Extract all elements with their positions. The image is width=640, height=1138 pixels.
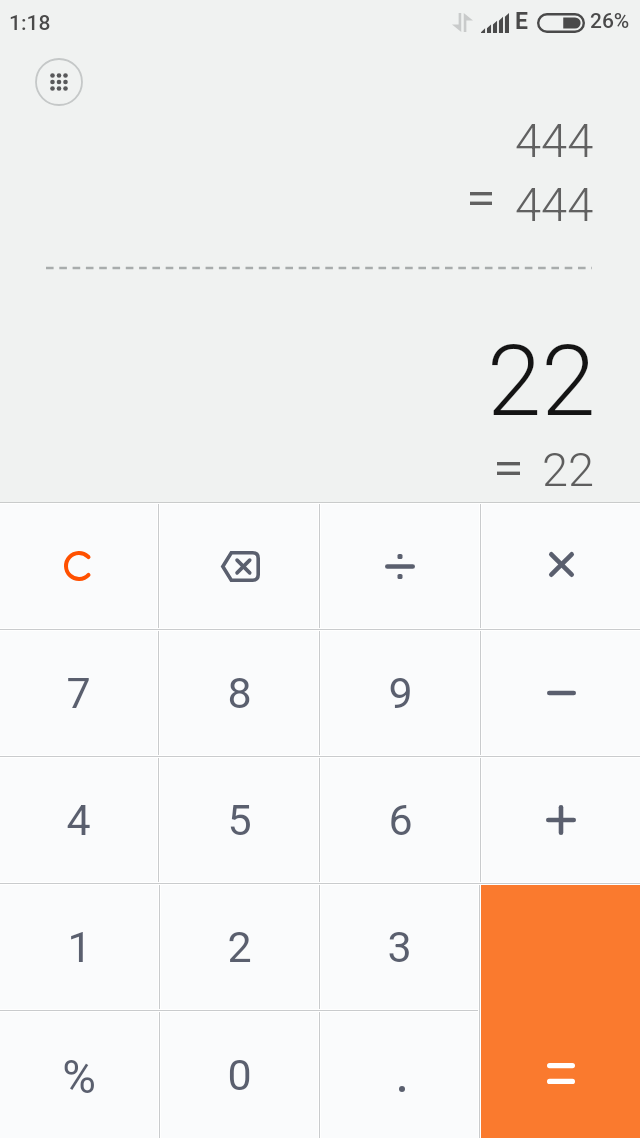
button[interactable]: 7 bbox=[0, 631, 157, 755]
button[interactable]: 0 bbox=[161, 1012, 318, 1138]
other: Multiply bbox=[549, 552, 574, 577]
button[interactable]: 9 bbox=[321, 631, 479, 755]
staticText: 2 bbox=[227, 922, 252, 972]
button[interactable]: Apps bbox=[30, 53, 88, 111]
other: Plus bbox=[546, 805, 576, 835]
other: Minus bbox=[547, 690, 576, 696]
staticText: 6 bbox=[388, 795, 413, 845]
button[interactable]: Divide bbox=[321, 504, 479, 628]
button[interactable]: Plus bbox=[482, 758, 640, 882]
button[interactable]: Backspace bbox=[160, 504, 318, 628]
staticText: 1 bbox=[67, 922, 92, 972]
staticText: 8 bbox=[227, 668, 252, 718]
staticText: 22 bbox=[542, 442, 595, 497]
button[interactable]: 3 bbox=[321, 885, 478, 1009]
button[interactable]: 2 bbox=[161, 885, 318, 1009]
button[interactable]: 6 bbox=[321, 758, 479, 882]
staticText: 1:18 bbox=[9, 11, 51, 36]
button[interactable]: Clear bbox=[0, 504, 157, 628]
button[interactable]: Percent bbox=[0, 1012, 158, 1138]
button[interactable]: 5 bbox=[160, 758, 318, 882]
other: Divide bbox=[385, 554, 415, 579]
button[interactable]: 4 bbox=[0, 758, 157, 882]
button[interactable]: Equals bbox=[481, 885, 640, 1138]
staticText: 0 bbox=[227, 1050, 252, 1100]
staticText: 5 bbox=[227, 795, 252, 845]
other: Backspace bbox=[219, 551, 260, 582]
button[interactable]: 1 bbox=[0, 885, 158, 1009]
staticText: 444 bbox=[515, 177, 594, 232]
staticText: 4 bbox=[66, 795, 91, 845]
staticText: 26% bbox=[590, 9, 630, 34]
button[interactable]: 8 bbox=[160, 631, 318, 755]
other: Clear bbox=[64, 550, 94, 582]
button[interactable]: Multiply bbox=[482, 504, 640, 628]
button[interactable]: Minus bbox=[482, 631, 640, 755]
staticText: 3 bbox=[387, 922, 412, 972]
staticText: 22 bbox=[487, 324, 596, 439]
staticText: 9 bbox=[388, 668, 413, 718]
button[interactable]: Decimal point bbox=[321, 1012, 478, 1138]
staticText: % bbox=[62, 1050, 96, 1104]
staticText: 444 bbox=[515, 113, 594, 168]
staticText: 7 bbox=[66, 668, 91, 718]
staticText: E bbox=[515, 8, 528, 35]
